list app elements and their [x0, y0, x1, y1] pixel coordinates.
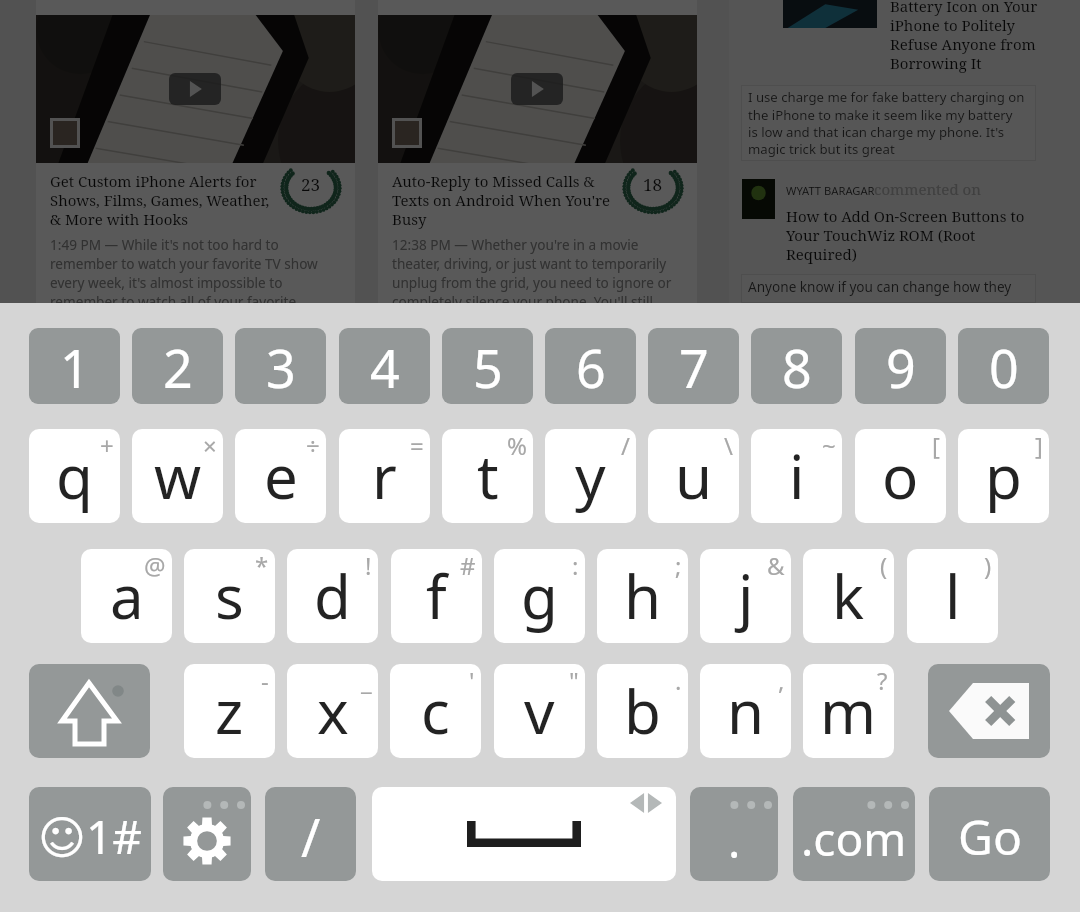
staticText: 1:49 PM — While it's not too hard to rem… — [50, 235, 347, 311]
button[interactable]: 6 — [545, 328, 636, 404]
button[interactable]: x — [287, 664, 378, 758]
staticText: q — [56, 435, 93, 517]
button[interactable]: w — [132, 429, 223, 523]
staticText: 6 — [576, 332, 606, 403]
staticText: = — [410, 429, 424, 462]
button[interactable]: / — [265, 787, 356, 881]
staticText: x — [317, 670, 349, 752]
button[interactable]: g — [494, 549, 585, 643]
button[interactable]: 1 — [29, 328, 120, 404]
button[interactable]: l — [907, 549, 998, 643]
staticText: How to Add On-Screen Buttons to Your Tou… — [786, 206, 1080, 264]
button[interactable]: Battery Icon on Your iPhone to Politely … — [729, 0, 1080, 303]
button[interactable]: m — [803, 664, 894, 758]
staticText: p — [985, 435, 1022, 517]
staticText: , — [778, 664, 785, 697]
staticText: s — [215, 555, 244, 637]
staticText: & — [767, 549, 785, 582]
staticText: 3 — [266, 332, 296, 403]
button[interactable]: y — [545, 429, 636, 523]
staticText: ! — [365, 549, 372, 582]
staticText: 18 — [643, 173, 663, 196]
button[interactable]: a — [81, 549, 172, 643]
staticText: 0 — [989, 332, 1019, 403]
staticText: w — [154, 435, 202, 517]
button[interactable]: o — [855, 429, 946, 523]
button[interactable]: .com — [793, 787, 915, 881]
staticText: m — [820, 670, 877, 752]
button[interactable]: c — [390, 664, 481, 758]
button[interactable]: Settings — [163, 787, 251, 881]
staticText: Go — [958, 804, 1022, 869]
staticText: e — [264, 435, 298, 517]
button[interactable]: 3 — [235, 328, 326, 404]
staticText: n — [727, 670, 765, 752]
staticText: WYATT BARAGAR — [786, 183, 875, 198]
button[interactable]: 9 — [855, 328, 946, 404]
button[interactable]: Backspace — [928, 664, 1050, 758]
staticText: ] — [1035, 429, 1043, 462]
staticText: i — [789, 435, 805, 517]
staticText: a — [110, 555, 144, 637]
button[interactable]: Go — [929, 787, 1050, 881]
staticText: ÷ — [306, 429, 320, 462]
staticText: 2 — [163, 332, 193, 403]
button[interactable]: e — [235, 429, 326, 523]
staticText: ; — [675, 549, 682, 582]
staticText: commented on — [874, 179, 981, 199]
staticText: × — [203, 429, 217, 462]
button[interactable]: i — [751, 429, 842, 523]
button[interactable]: u — [648, 429, 739, 523]
button[interactable]: f — [391, 549, 482, 643]
button[interactable]: 5 — [442, 328, 533, 404]
button[interactable]: z — [184, 664, 275, 758]
button[interactable]: 2 — [132, 328, 223, 404]
staticText: 5 — [473, 332, 503, 403]
staticText: 12:38 PM — Whether you're in a movie the… — [392, 235, 689, 311]
staticText: % — [507, 429, 527, 462]
staticText: \ — [724, 429, 733, 462]
button[interactable]: 0 — [958, 328, 1049, 404]
staticText: 7 — [679, 332, 709, 403]
button[interactable]: 8 — [751, 328, 842, 404]
button[interactable]: h — [597, 549, 688, 643]
staticText: r — [372, 435, 397, 517]
staticText: f — [426, 555, 447, 637]
staticText: l — [945, 555, 961, 637]
staticText: h — [624, 555, 662, 637]
staticText: .com — [801, 807, 907, 870]
button[interactable]: p — [958, 429, 1049, 523]
button[interactable]: q — [29, 429, 120, 523]
staticText: 8 — [782, 332, 812, 403]
staticText: o — [882, 435, 919, 517]
button[interactable]: Get Custom iPhone Alerts for Shows, Film… — [36, 0, 355, 303]
staticText: z — [215, 670, 244, 752]
button[interactable]: k — [803, 549, 894, 643]
staticText: 9 — [886, 332, 916, 403]
staticText: y — [575, 435, 606, 517]
staticText: d — [314, 555, 351, 637]
button[interactable]: s — [184, 549, 275, 643]
button[interactable]: v — [494, 664, 585, 758]
button[interactable]: d — [287, 549, 378, 643]
button[interactable]: t — [442, 429, 533, 523]
button[interactable]: 4 — [339, 328, 430, 404]
button[interactable]: 7 — [648, 328, 739, 404]
button[interactable]: j — [700, 549, 791, 643]
staticText: # — [460, 549, 476, 582]
staticText: c — [421, 670, 450, 752]
button[interactable]: r — [339, 429, 430, 523]
button[interactable]: . — [690, 787, 778, 881]
staticText: Battery Icon on Your iPhone to Politely … — [890, 0, 1080, 73]
button[interactable]: Shift — [29, 664, 150, 758]
staticText: 1 — [60, 332, 90, 403]
staticText: t — [477, 435, 499, 517]
staticText: " — [569, 664, 579, 697]
button[interactable]: n — [700, 664, 791, 758]
button[interactable]: Space — [372, 787, 676, 881]
button[interactable]: Symbols and emoji — [29, 787, 151, 881]
staticText: ( — [880, 549, 888, 582]
button[interactable]: b — [597, 664, 688, 758]
button[interactable]: Auto-Reply to Missed Calls & Texts on An… — [378, 0, 697, 303]
staticText: ? — [877, 664, 888, 697]
